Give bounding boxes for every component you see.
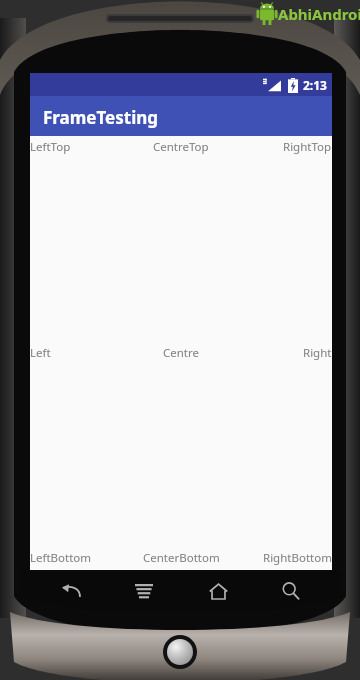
staticText: Right bbox=[303, 345, 332, 361]
staticText: CentreTop bbox=[153, 139, 209, 155]
button[interactable]: FrameTesting bbox=[30, 96, 332, 136]
staticText: Left bbox=[30, 345, 51, 361]
staticText: LeftTop bbox=[30, 139, 71, 155]
button[interactable]: Back bbox=[47, 574, 95, 608]
staticText: RightTop bbox=[283, 139, 332, 155]
staticText: AbhiAndroid bbox=[278, 4, 360, 24]
staticText: 2:13 bbox=[303, 77, 327, 93]
staticText: CenterBottom bbox=[143, 550, 220, 566]
button[interactable]: Menu bbox=[120, 574, 168, 608]
staticText: Centre bbox=[163, 345, 200, 361]
staticText: LeftBottom bbox=[30, 550, 92, 566]
staticText: RightBottom bbox=[263, 550, 332, 566]
staticText: FrameTesting bbox=[43, 106, 159, 129]
button[interactable]: Search bbox=[267, 574, 315, 608]
button[interactable]: Home bbox=[194, 574, 242, 608]
